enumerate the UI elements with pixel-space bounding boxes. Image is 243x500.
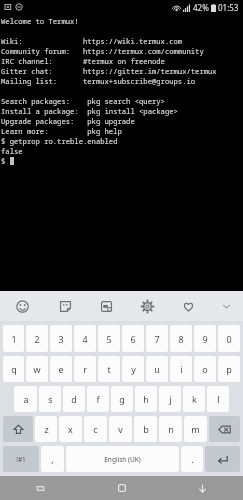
- button[interactable]: c: [84, 416, 107, 442]
- button[interactable]: q: [3, 356, 24, 382]
- button[interactable]: Keyboard settings: [127, 291, 168, 321]
- staticText: x: [68, 423, 73, 435]
- staticText: s: [48, 393, 53, 405]
- staticText: false: [1, 146, 23, 156]
- button[interactable]: y: [122, 356, 144, 382]
- button[interactable]: l: [207, 386, 229, 412]
- button[interactable]: p: [218, 356, 240, 382]
- button[interactable]: 5: [98, 325, 120, 352]
- button[interactable]: n: [159, 416, 182, 442]
- staticText: m: [191, 423, 200, 435]
- staticText: e: [58, 363, 64, 375]
- staticText: v: [118, 423, 123, 435]
- staticText: !#1: [16, 455, 26, 464]
- staticText: c: [93, 423, 98, 435]
- staticText: 2: [34, 333, 40, 345]
- staticText: i: [180, 363, 183, 375]
- staticText: u: [154, 363, 160, 375]
- button[interactable]: w: [26, 356, 48, 382]
- staticText: w: [33, 363, 41, 375]
- button[interactable]: Collapse toolbar: [209, 291, 243, 321]
- button[interactable]: 7: [146, 325, 168, 352]
- button[interactable]: g: [111, 386, 133, 412]
- staticText: Mailing list: termux+subscribe@groups.io: [1, 76, 196, 86]
- button[interactable]: Shift: [3, 416, 33, 442]
- button[interactable]: 3: [50, 325, 72, 352]
- button[interactable]: English (UK): [66, 446, 179, 472]
- button[interactable]: 9: [194, 325, 216, 352]
- button[interactable]: v: [109, 416, 132, 442]
- staticText: Wiki: https://wiki.termux.com: [1, 36, 183, 46]
- button[interactable]: Delete: [209, 416, 240, 442]
- staticText: .: [191, 453, 194, 465]
- button[interactable]: Hide keyboard: [162, 476, 243, 500]
- staticText: 1: [11, 333, 17, 345]
- staticText: Learn more: pkg help: [1, 126, 122, 136]
- button[interactable]: r: [74, 356, 96, 382]
- staticText: 01:53: [218, 2, 239, 13]
- staticText: o: [202, 363, 208, 375]
- staticText: 0: [226, 333, 232, 345]
- button[interactable]: Stickers: [44, 291, 86, 321]
- staticText: 8: [178, 333, 184, 345]
- staticText: 3: [58, 333, 64, 345]
- staticText: p: [226, 363, 232, 375]
- button[interactable]: 0: [218, 325, 240, 352]
- staticText: 7: [154, 333, 160, 345]
- button[interactable]: t: [98, 356, 120, 382]
- staticText: b: [143, 423, 149, 435]
- button[interactable]: ,: [41, 446, 64, 472]
- button[interactable]: m: [184, 416, 207, 442]
- button[interactable]: b: [134, 416, 157, 442]
- staticText: d: [71, 393, 77, 405]
- staticText: Install a package: pkg install <package>: [1, 106, 178, 116]
- button[interactable]: s: [39, 386, 61, 412]
- button[interactable]: Recents: [0, 476, 81, 500]
- staticText: $: [1, 156, 10, 166]
- staticText: h: [143, 393, 149, 405]
- button[interactable]: Favorites: [168, 291, 209, 321]
- button[interactable]: Emoji: [0, 291, 44, 321]
- staticText: IRC channel: #termux on freenode: [1, 56, 165, 66]
- button[interactable]: o: [194, 356, 216, 382]
- staticText: l: [217, 393, 220, 405]
- button[interactable]: h: [135, 386, 157, 412]
- button[interactable]: !#1: [3, 446, 39, 472]
- button[interactable]: GIF: [86, 291, 127, 321]
- button[interactable]: Home: [81, 476, 162, 500]
- staticText: Search packages: pkg search <query>: [1, 96, 165, 106]
- button[interactable]: k: [183, 386, 205, 412]
- staticText: 42%: [193, 2, 209, 13]
- button[interactable]: e: [50, 356, 72, 382]
- staticText: ,: [51, 453, 54, 465]
- staticText: Community forum: https://termux.com/comm…: [1, 46, 204, 56]
- staticText: n: [168, 423, 174, 435]
- button[interactable]: j: [159, 386, 181, 412]
- button[interactable]: 1: [3, 325, 24, 352]
- staticText: 6: [130, 333, 136, 345]
- staticText: z: [44, 423, 49, 435]
- staticText: English (UK): [104, 455, 141, 464]
- button[interactable]: a: [14, 386, 37, 412]
- button[interactable]: 6: [122, 325, 144, 352]
- staticText: a: [23, 393, 29, 405]
- button[interactable]: Enter: [205, 446, 240, 472]
- button[interactable]: z: [35, 416, 57, 442]
- button[interactable]: .: [181, 446, 203, 472]
- button[interactable]: x: [59, 416, 82, 442]
- staticText: Upgrade packages: pkg upgrade: [1, 116, 135, 126]
- staticText: f: [96, 393, 100, 405]
- button[interactable]: 8: [170, 325, 192, 352]
- button[interactable]: Welcome to Termux!: [0, 14, 243, 291]
- staticText: y: [131, 363, 136, 375]
- button[interactable]: i: [170, 356, 192, 382]
- button[interactable]: f: [87, 386, 109, 412]
- button[interactable]: 2: [26, 325, 48, 352]
- staticText: q: [11, 363, 17, 375]
- staticText: g: [119, 393, 125, 405]
- button[interactable]: u: [146, 356, 168, 382]
- button[interactable]: d: [63, 386, 85, 412]
- staticText: $ getprop ro.treble.enabled: [1, 136, 118, 146]
- button[interactable]: 4: [74, 325, 96, 352]
- staticText: Welcome to Termux!: [1, 16, 79, 26]
